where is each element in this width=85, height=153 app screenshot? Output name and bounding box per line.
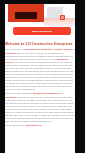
staticText: Call us : 813-294-7936 <box>32 30 52 33</box>
button[interactable]: Call us : 813-294-7936 <box>13 27 71 35</box>
staticText: 3-D Construction is offering Residential… <box>5 92 75 122</box>
button[interactable]: Menu <box>60 15 65 20</box>
staticText: Are you looking for Swimming Pool Demoli… <box>5 48 75 90</box>
staticText: Welcome to 3-D Construction Enterprises <box>5 41 73 45</box>
staticText: We also Specialize in Swimming Pool <box>5 124 42 127</box>
